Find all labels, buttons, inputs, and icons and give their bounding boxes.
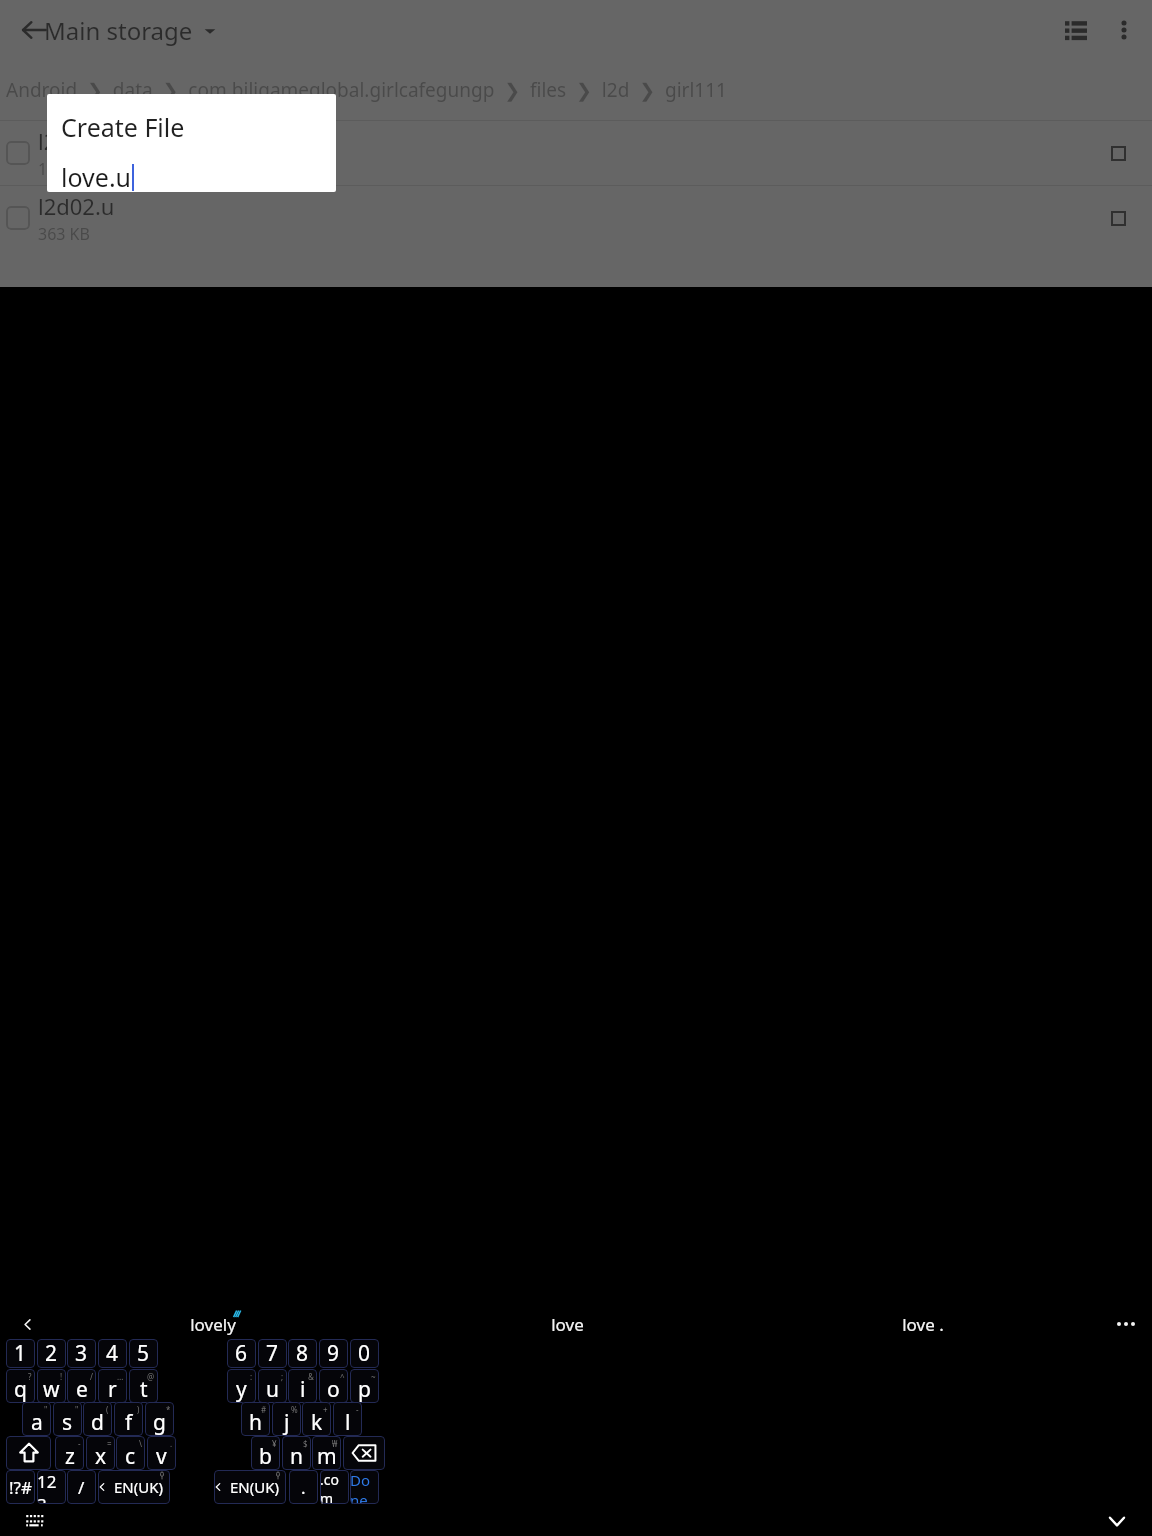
staticText: love [551,1313,584,1336]
button[interactable]: - [55,1436,84,1470]
button[interactable]: More [1100,1311,1152,1337]
button[interactable]: … [98,1369,127,1403]
button[interactable]: * [145,1402,174,1436]
staticText: . [301,1476,306,1499]
button[interactable]: l2d01.u [0,121,1152,185]
staticText: 1 [14,1339,27,1368]
button[interactable]: lovely [36,1311,390,1337]
staticText: : [250,1371,253,1382]
staticText: love.u [61,160,132,192]
button[interactable]: = [86,1436,115,1470]
button[interactable]: 4 [98,1339,127,1368]
staticText: p [358,1375,371,1403]
button[interactable]: & [288,1369,317,1403]
staticText: .com [320,1470,349,1504]
staticText: 7 [266,1339,279,1368]
staticText: love . [902,1313,944,1336]
button[interactable]: + [302,1402,331,1436]
button[interactable]: ~ [350,1369,379,1403]
staticText: ) [137,1404,140,1415]
button[interactable]: " [53,1402,82,1436]
staticText: ^ [340,1371,345,1382]
staticText: # [261,1404,267,1415]
button[interactable]: 123 [37,1470,66,1504]
button[interactable]: ¥ [251,1436,280,1470]
button[interactable]: % [272,1402,301,1436]
button[interactable]: / [67,1369,96,1403]
staticText: 2 [45,1339,58,1368]
button[interactable]: .com [320,1470,349,1504]
button[interactable]: ? [6,1369,35,1403]
button[interactable]: Back [10,6,58,54]
staticText: f [125,1408,133,1436]
button[interactable]: 1 [6,1339,35,1368]
button[interactable]: 5 [129,1339,158,1368]
staticText: . [170,1438,173,1449]
button[interactable]: / [67,1470,96,1504]
button[interactable]: Shift [6,1436,51,1470]
staticText: 6 [235,1339,248,1368]
staticText: / [90,1371,93,1382]
staticText: - [356,1404,359,1415]
staticText: Done [350,1470,379,1504]
button[interactable]: ^ [319,1369,348,1403]
staticText: v [156,1442,167,1470]
staticText: g [153,1408,166,1436]
staticText: ; [281,1371,284,1382]
button[interactable]: \ [116,1436,145,1470]
button[interactable]: Done [350,1470,379,1504]
button[interactable]: Change keyboard [18,1506,52,1536]
button[interactable]: 2 [37,1339,66,1368]
button[interactable]: Space, EN(UK) [98,1470,170,1504]
button[interactable]: # [241,1402,270,1436]
button[interactable]: List view [1052,6,1100,54]
button[interactable]: " [22,1402,51,1436]
staticText: " [44,1404,48,1415]
button[interactable]: !?# [6,1470,35,1504]
staticText: w [43,1375,60,1403]
button[interactable]: Space, EN(UK) [214,1470,286,1504]
staticText: EN(UK) [230,1477,279,1497]
staticText: n [290,1442,303,1470]
button[interactable]: . [289,1470,318,1504]
button[interactable]: Previous suggestions [12,1311,42,1337]
button[interactable]: 6 [227,1339,256,1368]
staticText: z [65,1442,75,1470]
button[interactable]: $ [282,1436,311,1470]
button[interactable]: @ [129,1369,158,1403]
staticText: y [236,1375,247,1403]
button[interactable]: - [333,1402,362,1436]
staticText: h [249,1408,262,1436]
button[interactable]: 0 [350,1339,379,1368]
staticText: l [345,1408,351,1436]
staticText: q [14,1375,27,1403]
button[interactable]: Main storage [44,14,217,47]
staticText: u [266,1375,279,1403]
button[interactable]: ; [258,1369,287,1403]
button[interactable]: ! [37,1369,66,1403]
button[interactable]: ₩ [312,1436,341,1470]
button[interactable]: : [227,1369,256,1403]
button[interactable]: 9 [319,1339,348,1368]
button[interactable]: Backspace [343,1436,385,1470]
button[interactable]: 7 [258,1339,287,1368]
staticText: 123 [37,1470,66,1504]
button[interactable]: 8 [288,1339,317,1368]
staticText: l2d01.u [38,126,115,156]
button[interactable]: love . [745,1311,1100,1337]
staticText: m [317,1442,337,1470]
button[interactable]: l2d02.u [0,186,1152,250]
staticText: ! [60,1371,63,1382]
button[interactable]: . [147,1436,176,1470]
button[interactable]: 3 [67,1339,96,1368]
staticText: 363 KB [38,223,90,245]
button[interactable]: Hide keyboard [1100,1506,1134,1536]
staticText: s [62,1408,73,1436]
staticText: 9 [327,1339,340,1368]
staticText: & [308,1371,314,1382]
button[interactable]: More options [1100,6,1148,54]
button[interactable]: ) [114,1402,143,1436]
button[interactable]: ( [83,1402,112,1436]
button[interactable]: love [390,1311,745,1337]
staticText: i [300,1375,306,1403]
